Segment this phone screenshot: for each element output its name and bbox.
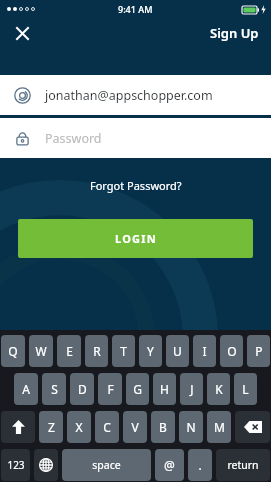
button[interactable]: Sign Up <box>198 20 271 46</box>
button[interactable]: N <box>179 411 203 443</box>
button[interactable]: return <box>216 449 270 481</box>
staticText: Sign Up <box>210 24 259 42</box>
staticText: space <box>92 458 121 472</box>
staticText: N <box>186 419 196 435</box>
button[interactable]: S <box>42 373 66 405</box>
staticText: R <box>93 343 101 359</box>
button[interactable]: D <box>70 373 94 405</box>
staticText: L <box>242 381 249 397</box>
staticText: K <box>215 381 223 397</box>
button[interactable]: T <box>112 335 135 367</box>
button[interactable]: Z <box>39 411 63 443</box>
button[interactable]: W <box>29 335 53 367</box>
button[interactable]: A <box>14 373 38 405</box>
button[interactable]: J <box>180 373 203 405</box>
staticText: C <box>103 419 111 435</box>
staticText: O <box>227 343 237 359</box>
staticText: B <box>159 419 167 435</box>
button[interactable]: space <box>62 449 151 481</box>
staticText: F <box>107 381 114 397</box>
staticText: Q <box>8 343 18 359</box>
button[interactable]: E <box>57 335 81 367</box>
button[interactable]: B <box>151 411 175 443</box>
staticText: U <box>173 343 182 359</box>
staticText: T <box>120 343 127 359</box>
staticText: H <box>160 381 169 397</box>
button[interactable]: Q <box>1 335 25 367</box>
button[interactable]: K <box>207 373 230 405</box>
button[interactable]: V <box>123 411 147 443</box>
button[interactable]: jonathan@appschopper.com <box>0 75 271 115</box>
staticText: G <box>133 381 142 397</box>
staticText: @ <box>164 457 175 473</box>
staticText: . <box>198 457 202 473</box>
button[interactable]: F <box>98 373 122 405</box>
button[interactable]: Shift <box>1 411 35 443</box>
button[interactable]: G <box>126 373 149 405</box>
staticText: Password <box>45 130 102 147</box>
staticText: LOGIN <box>115 231 157 246</box>
staticText: Forgot Password? <box>90 178 182 193</box>
staticText: Z <box>48 419 55 435</box>
button[interactable]: R <box>85 335 108 367</box>
staticText: I <box>202 343 207 359</box>
staticText: M <box>214 419 225 435</box>
staticText: J <box>190 381 194 397</box>
button[interactable]: H <box>153 373 176 405</box>
staticText: S <box>51 381 58 397</box>
button[interactable]: O <box>220 335 243 367</box>
button[interactable]: P <box>247 335 270 367</box>
button[interactable]: Y <box>139 335 162 367</box>
button[interactable]: I <box>193 335 216 367</box>
staticText: X <box>75 419 83 435</box>
staticText: W <box>35 343 47 359</box>
button[interactable]: L <box>234 373 257 405</box>
staticText: 123 <box>7 458 25 472</box>
button[interactable]: @ <box>155 449 184 481</box>
staticText: return <box>227 458 259 472</box>
button[interactable]: . <box>188 449 212 481</box>
button[interactable]: Password <box>0 118 271 158</box>
button[interactable]: C <box>95 411 119 443</box>
button[interactable]: Change keyboard <box>34 449 58 481</box>
button[interactable]: U <box>166 335 189 367</box>
button[interactable]: LOGIN <box>18 219 253 258</box>
button[interactable]: 123 <box>1 449 30 481</box>
staticText: V <box>131 419 139 435</box>
button[interactable]: Forgot Password? <box>0 174 271 197</box>
staticText: A <box>22 381 30 397</box>
staticText: P <box>255 343 263 359</box>
staticText: D <box>78 381 87 397</box>
staticText: 9:41 AM <box>118 3 153 15</box>
staticText: E <box>66 343 73 359</box>
button[interactable]: Backspace <box>235 411 270 443</box>
staticText: jonathan@appschopper.com <box>45 87 213 104</box>
button[interactable]: M <box>207 411 231 443</box>
button[interactable]: Close <box>8 19 36 47</box>
button[interactable]: X <box>67 411 91 443</box>
staticText: Y <box>147 343 154 359</box>
